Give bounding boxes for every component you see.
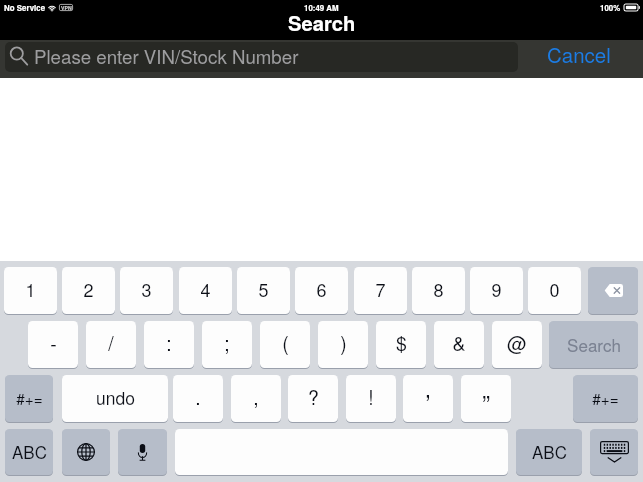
button[interactable]: . [173, 375, 223, 422]
button[interactable]: undo [62, 375, 168, 422]
button[interactable]: ABC [516, 429, 582, 475]
staticText: ” [482, 385, 490, 419]
button[interactable]: ” [461, 375, 511, 422]
staticText: ABC [532, 439, 567, 463]
button[interactable]: Search [549, 321, 638, 368]
button[interactable]: ABC [5, 429, 53, 475]
button[interactable]: - [28, 321, 78, 368]
button[interactable]: / [86, 321, 136, 368]
staticText: ; [224, 329, 230, 357]
button[interactable]: Backspace [588, 267, 638, 314]
staticText: 100% [600, 2, 621, 13]
button[interactable]: 8 [412, 267, 465, 314]
staticText: ’ [425, 385, 431, 419]
staticText: ( [282, 329, 289, 357]
button[interactable]: : [144, 321, 194, 368]
staticText: ! [368, 383, 374, 411]
staticText: / [108, 329, 114, 357]
button[interactable]: ! [346, 375, 396, 422]
staticText: $ [396, 329, 407, 357]
staticText: Please enter VIN/Stock Number [34, 43, 299, 70]
staticText: 10:49 AM [304, 2, 339, 13]
staticText: 5 [258, 276, 269, 302]
staticText: Cancel [547, 39, 611, 68]
button[interactable]: 0 [528, 267, 581, 314]
staticText: #+= [16, 387, 43, 409]
button[interactable]: 9 [470, 267, 523, 314]
button[interactable]: & [434, 321, 484, 368]
staticText: VPN [61, 4, 72, 11]
button[interactable]: @ [492, 321, 542, 368]
staticText: 4 [200, 276, 211, 302]
staticText: 8 [433, 276, 444, 302]
staticText: Search [288, 8, 356, 32]
button[interactable]: 1 [4, 267, 57, 314]
staticText: 7 [375, 276, 386, 302]
staticText: - [50, 329, 57, 357]
button[interactable]: Cancel [518, 40, 639, 78]
button[interactable]: $ [376, 321, 426, 368]
button[interactable]: , [231, 375, 281, 422]
button[interactable]: #+= [573, 375, 638, 422]
staticText: 9 [491, 276, 502, 302]
button[interactable]: Dictation [118, 429, 167, 475]
button[interactable]: Please enter VIN/Stock Number [5, 42, 518, 72]
staticText: . [195, 383, 201, 411]
staticText: 0 [549, 276, 560, 302]
staticText: 3 [141, 276, 152, 302]
button[interactable]: ) [318, 321, 368, 368]
staticText: No Service [4, 2, 46, 13]
button[interactable]: ? [288, 375, 338, 422]
staticText: 1 [25, 276, 36, 302]
button[interactable]: 7 [354, 267, 407, 314]
staticText: ABC [12, 439, 47, 463]
button[interactable]: 3 [120, 267, 173, 314]
button[interactable]: ; [202, 321, 252, 368]
button[interactable]: Hide keyboard [590, 429, 638, 475]
staticText: 6 [316, 276, 327, 302]
staticText: ? [308, 383, 319, 411]
button[interactable]: 2 [62, 267, 115, 314]
button[interactable]: #+= [5, 375, 53, 422]
button[interactable]: Change keyboard [62, 429, 110, 475]
button[interactable]: ’ [403, 375, 453, 422]
staticText: 2 [83, 276, 94, 302]
staticText: ) [340, 329, 347, 357]
button[interactable]: ( [260, 321, 310, 368]
staticText: : [166, 329, 172, 357]
staticText: undo [96, 385, 135, 410]
staticText: Search [567, 332, 621, 356]
button[interactable]: 6 [295, 267, 348, 314]
staticText: #+= [592, 387, 619, 409]
staticText: & [452, 329, 466, 357]
button[interactable]: 4 [179, 267, 232, 314]
staticText: @ [507, 329, 527, 357]
button[interactable]: 5 [237, 267, 290, 314]
staticText: , [253, 383, 259, 411]
